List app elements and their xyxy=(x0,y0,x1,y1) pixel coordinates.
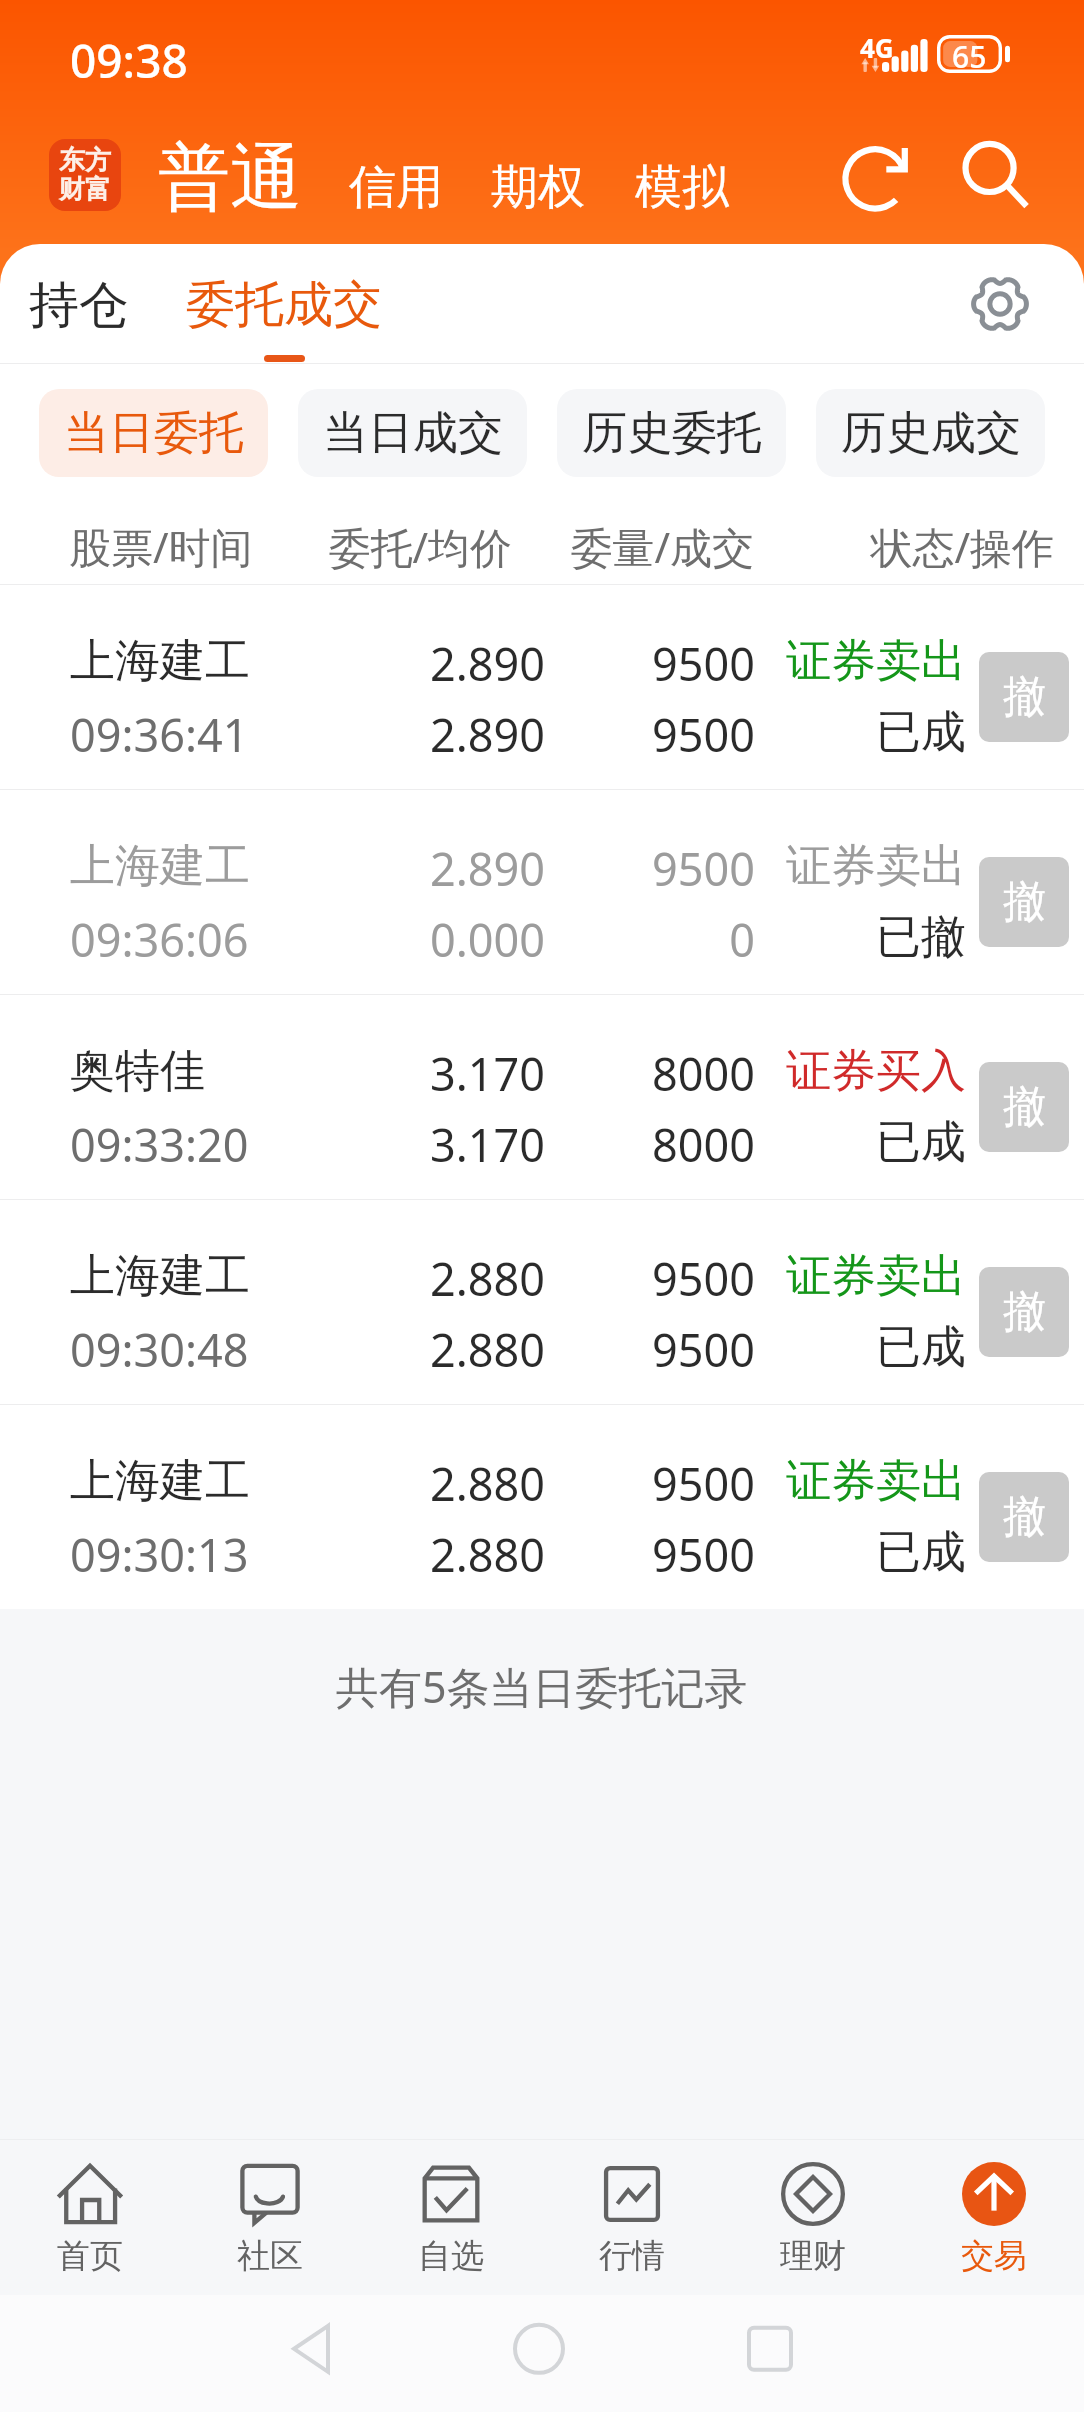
staticText: 09:30:13 xyxy=(70,1524,249,1585)
button[interactable]: Search xyxy=(944,125,1044,225)
staticText: 2.880 xyxy=(0,1524,545,1585)
button[interactable]: 信用 xyxy=(331,148,461,227)
button[interactable]: 撤 xyxy=(979,652,1069,742)
button[interactable]: 当日成交 xyxy=(298,389,527,477)
staticText: 65 xyxy=(952,36,987,74)
staticText: 证券卖出 xyxy=(0,1453,966,1510)
button[interactable]: 期权 xyxy=(473,148,603,227)
staticText: 上海建工 xyxy=(70,1248,250,1305)
staticText: 证券卖出 xyxy=(0,838,966,895)
staticText: 普通 xyxy=(158,133,302,224)
button[interactable]: 历史委托 xyxy=(557,389,786,477)
button[interactable]: Settings xyxy=(962,266,1038,342)
staticText: 3.170 xyxy=(0,1114,545,1175)
staticText: 委托/均价 xyxy=(0,518,512,575)
staticText: 撤 xyxy=(1003,670,1046,724)
button[interactable]: 东方财富 xyxy=(49,139,121,211)
staticText: 行情 xyxy=(599,2235,665,2277)
staticText: 撤 xyxy=(1003,1080,1046,1134)
staticText: 9500 xyxy=(0,1319,755,1380)
button[interactable]: 奥特佳 xyxy=(0,995,1084,1199)
button[interactable]: 行情 xyxy=(541,2140,722,2295)
staticText: 东方 xyxy=(59,144,111,177)
staticText: 财富 xyxy=(59,173,111,206)
button[interactable]: 自选 xyxy=(360,2140,541,2295)
button[interactable]: 撤 xyxy=(979,1472,1069,1562)
button[interactable]: 上海建工 xyxy=(0,1405,1084,1609)
staticText: 0 xyxy=(0,909,755,970)
button[interactable]: 社区 xyxy=(180,2140,360,2295)
staticText: 上海建工 xyxy=(70,633,250,690)
staticText: 已成 xyxy=(0,1524,966,1581)
button[interactable]: 首页 xyxy=(0,2140,180,2295)
button[interactable]: 历史成交 xyxy=(816,389,1045,477)
staticText: 历史委托 xyxy=(582,405,762,462)
button[interactable]: 上海建工 xyxy=(0,585,1084,789)
staticText: 8000 xyxy=(0,1043,755,1104)
staticText: 09:36:41 xyxy=(70,704,249,765)
staticText: 社区 xyxy=(237,2235,303,2277)
staticText: 9500 xyxy=(0,1248,755,1309)
staticText: 信用 xyxy=(349,158,443,217)
staticText: 当日委托 xyxy=(64,405,244,462)
staticText: 09:33:20 xyxy=(70,1114,249,1175)
staticText: 持仓 xyxy=(29,274,129,337)
staticText: 当日成交 xyxy=(323,405,503,462)
staticText: 撤 xyxy=(1003,875,1046,929)
staticText: 模拟 xyxy=(635,158,729,217)
button[interactable]: Refresh xyxy=(829,125,929,225)
staticText: 9500 xyxy=(0,838,755,899)
staticText: 9500 xyxy=(0,633,755,694)
button[interactable]: 撤 xyxy=(979,1062,1069,1152)
staticText: 委托成交 xyxy=(186,274,382,336)
staticText: 状态/操作 xyxy=(0,518,1054,575)
staticText: 撤 xyxy=(1003,1490,1046,1544)
staticText: 09:36:06 xyxy=(70,909,249,970)
staticText: 证券卖出 xyxy=(0,633,966,690)
staticText: 已成 xyxy=(0,704,966,761)
button[interactable]: 当日委托 xyxy=(39,389,268,477)
button[interactable]: 上海建工 xyxy=(0,1200,1084,1404)
staticText: 理财 xyxy=(780,2235,846,2277)
button[interactable]: 持仓 xyxy=(7,260,151,351)
staticText: 首页 xyxy=(57,2235,123,2277)
staticText: 共有5条当日委托记录 xyxy=(336,1657,748,1716)
staticText: 2.890 xyxy=(0,633,545,694)
button[interactable]: 撤 xyxy=(979,857,1069,947)
staticText: 2.890 xyxy=(0,838,545,899)
staticText: 3.170 xyxy=(0,1043,545,1104)
staticText: 09:30:48 xyxy=(70,1319,249,1380)
staticText: 证券买入 xyxy=(0,1043,966,1100)
staticText: 2.880 xyxy=(0,1319,545,1380)
staticText: 已成 xyxy=(0,1319,966,1376)
staticText: 已撤 xyxy=(0,909,966,966)
staticText: 交易 xyxy=(961,2235,1027,2277)
staticText: 奥特佳 xyxy=(70,1043,205,1100)
button[interactable]: 上海建工 xyxy=(0,790,1084,994)
staticText: 历史成交 xyxy=(841,405,1021,462)
button[interactable]: 理财 xyxy=(722,2140,903,2295)
staticText: 已成 xyxy=(0,1114,966,1171)
staticText: 期权 xyxy=(491,158,585,217)
staticText: 撤 xyxy=(1003,1285,1046,1339)
staticText: 上海建工 xyxy=(70,1453,250,1510)
button[interactable]: 模拟 xyxy=(617,148,747,227)
staticText: 9500 xyxy=(0,1524,755,1585)
staticText: 自选 xyxy=(418,2235,484,2277)
staticText: 上海建工 xyxy=(70,838,250,895)
button[interactable]: 交易 xyxy=(903,2140,1084,2295)
staticText: 8000 xyxy=(0,1114,755,1175)
staticText: 委量/成交 xyxy=(0,518,754,575)
staticText: 证券卖出 xyxy=(0,1248,966,1305)
staticText: 0.000 xyxy=(0,909,545,970)
staticText: 2.880 xyxy=(0,1248,545,1309)
button[interactable]: 委托成交 xyxy=(164,260,404,376)
staticText: 9500 xyxy=(0,704,755,765)
staticText: 2.890 xyxy=(0,704,545,765)
staticText: 股票/时间 xyxy=(69,518,253,575)
staticText: 9500 xyxy=(0,1453,755,1514)
button[interactable]: 普通 xyxy=(140,125,320,232)
staticText: 2.880 xyxy=(0,1453,545,1514)
staticText: 4G xyxy=(860,30,894,65)
button[interactable]: 撤 xyxy=(979,1267,1069,1357)
